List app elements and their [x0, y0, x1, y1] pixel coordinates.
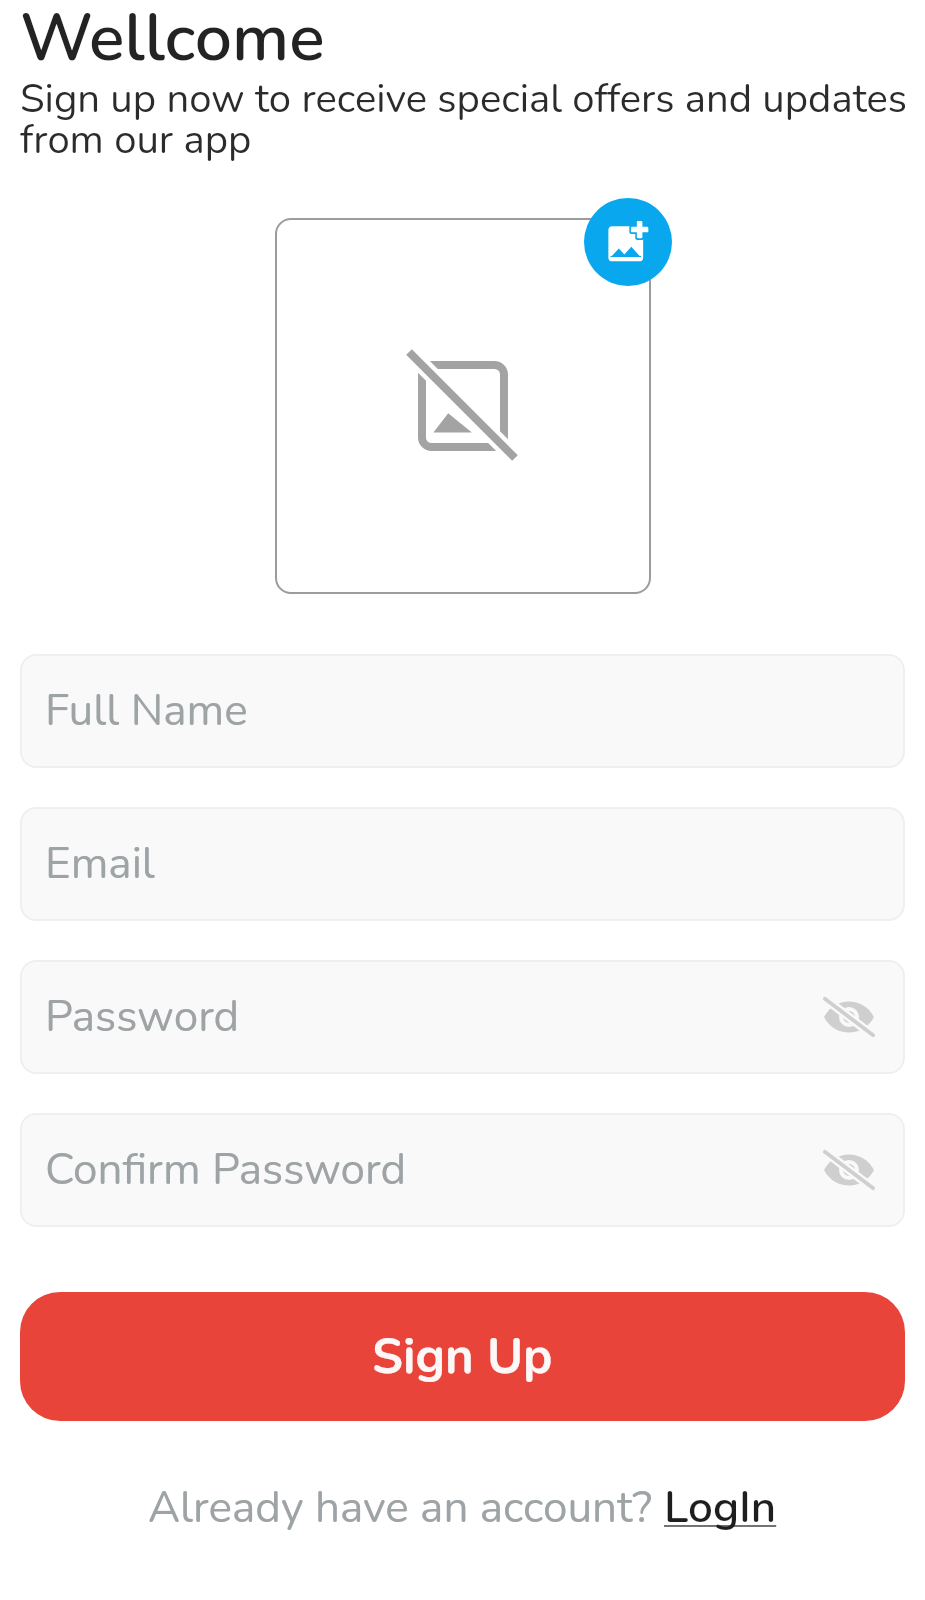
button[interactable]: Add photo — [584, 198, 672, 286]
staticText: Confirm Password — [45, 1140, 407, 1200]
button[interactable]: Password — [20, 960, 905, 1074]
button[interactable]: LogIn — [664, 1478, 777, 1538]
button[interactable] — [275, 218, 651, 594]
button[interactable]: Toggle password visibility — [823, 997, 875, 1037]
staticText: Sign Up — [372, 1323, 553, 1390]
staticText: Already have an account? — [148, 1478, 664, 1538]
staticText: Wellcome — [20, 0, 325, 83]
button[interactable]: Sign Up — [20, 1292, 905, 1421]
staticText: Full Name — [45, 681, 248, 741]
staticText: Sign up now to receive special offers an… — [20, 72, 925, 167]
staticText: LogIn — [664, 1478, 777, 1538]
staticText: Password — [45, 987, 240, 1047]
button[interactable]: Full Name — [20, 654, 905, 768]
staticText: Email — [45, 834, 155, 894]
button[interactable]: Confirm Password — [20, 1113, 905, 1227]
button[interactable]: Toggle password visibility — [823, 1150, 875, 1190]
button[interactable]: Email — [20, 807, 905, 921]
